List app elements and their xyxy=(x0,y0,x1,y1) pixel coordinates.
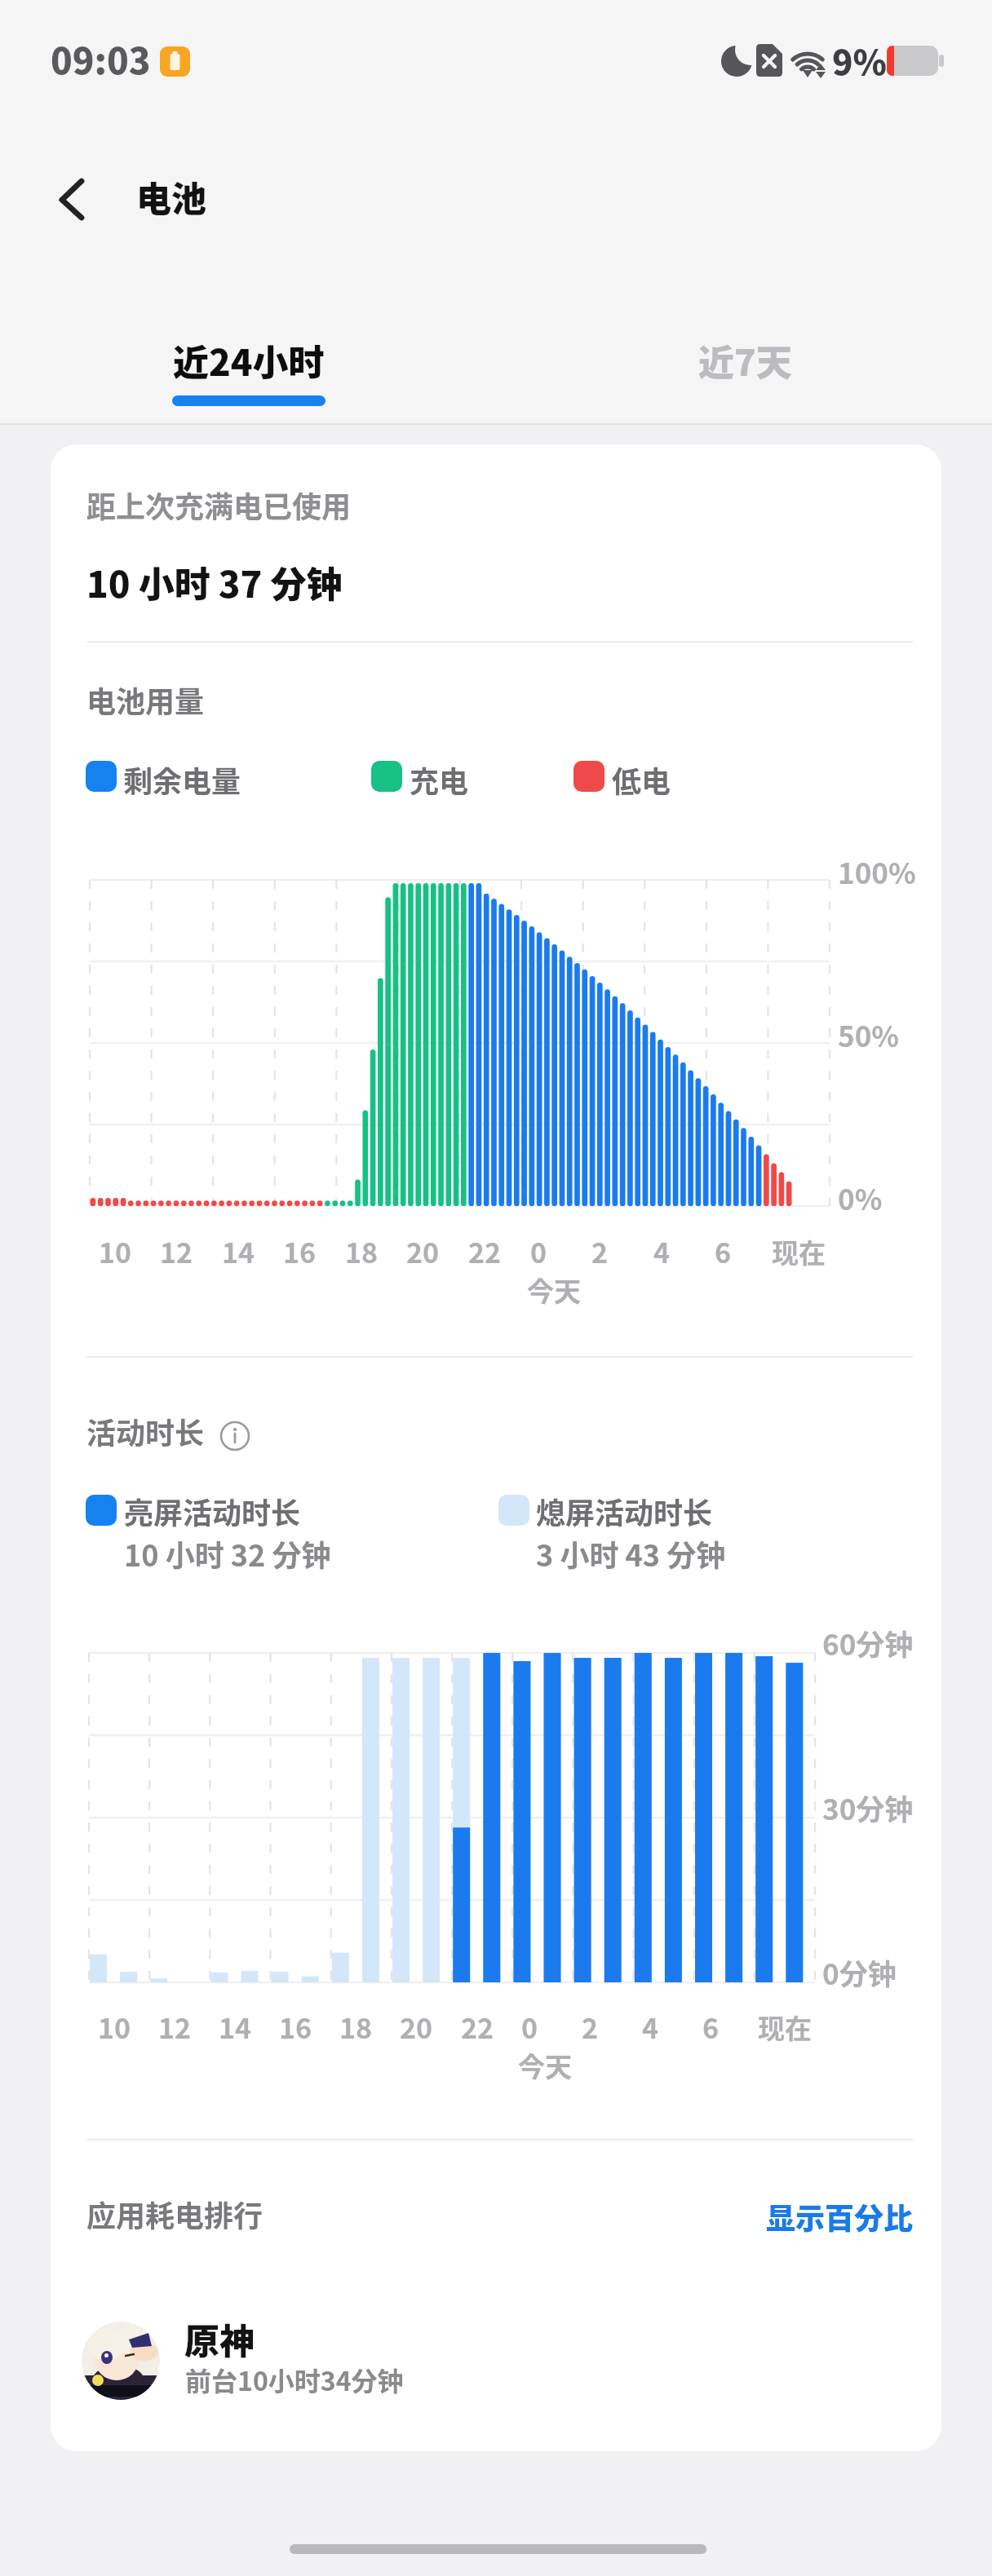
button[interactable] xyxy=(51,2291,941,2430)
staticText: 14 xyxy=(219,2007,252,2047)
staticText: 原神 xyxy=(184,2313,255,2364)
staticText: 2 xyxy=(582,2007,599,2047)
staticText: 16 xyxy=(279,2007,312,2047)
staticText: 10 小时 37 分钟 xyxy=(86,556,343,608)
staticText: 10 xyxy=(99,1231,132,1271)
staticText: 剩余电量 xyxy=(123,758,241,801)
staticText: 0% xyxy=(838,1177,883,1218)
staticText: 18 xyxy=(345,1231,379,1271)
staticText: 熄屏活动时长 xyxy=(536,1490,713,1532)
staticText: 电池 xyxy=(136,171,206,222)
staticText: 0 xyxy=(530,1231,547,1271)
staticText: 20 xyxy=(406,1231,440,1271)
staticText: 近7天 xyxy=(698,334,792,387)
staticText: 亮屏活动时长 xyxy=(124,1490,301,1532)
staticText: 60分钟 xyxy=(822,1622,914,1664)
staticText: 20 xyxy=(400,2007,433,2047)
staticText: 4 xyxy=(653,1231,671,1271)
staticText: 10 小时 32 分钟 xyxy=(124,1532,331,1575)
staticText: 今天 xyxy=(527,1270,581,1310)
staticText: 今天 xyxy=(518,2046,572,2085)
staticText: 0分钟 xyxy=(822,1951,897,1993)
button[interactable]: 近24小时 xyxy=(51,326,447,424)
button[interactable]: 显示百分比 xyxy=(751,2184,914,2249)
staticText: 0 xyxy=(521,2007,538,2047)
staticText: 22 xyxy=(468,1231,502,1271)
staticText: 现在 xyxy=(772,1232,826,1271)
staticText: 低电 xyxy=(612,758,671,801)
staticText: 电池用量 xyxy=(86,678,205,721)
staticText: 3 小时 43 分钟 xyxy=(536,1532,726,1575)
staticText: 前台10小时34分钟 xyxy=(185,2361,404,2398)
staticText: 6 xyxy=(715,1231,732,1271)
staticText: 16 xyxy=(283,1231,317,1271)
staticText: 2 xyxy=(591,1231,609,1271)
staticText: 12 xyxy=(158,2007,192,2047)
staticText: 10 xyxy=(98,2007,131,2047)
staticText: 18 xyxy=(339,2007,373,2047)
button[interactable]: 近7天 xyxy=(547,326,943,424)
staticText: 距上次充满电已使用 xyxy=(86,484,352,526)
staticText: 6 xyxy=(702,2007,720,2047)
staticText: 充电 xyxy=(410,758,469,801)
staticText: 12 xyxy=(160,1231,193,1271)
staticText: 近24小时 xyxy=(173,334,325,387)
staticText: 50% xyxy=(838,1014,900,1055)
staticText: 活动时长 xyxy=(86,1410,205,1452)
staticText: 30分钟 xyxy=(822,1787,914,1828)
staticText: 100% xyxy=(838,851,916,892)
staticText: 9% xyxy=(832,35,887,85)
staticText: 09:03 xyxy=(51,33,151,85)
staticText: 显示百分比 xyxy=(766,2195,914,2238)
staticText: 22 xyxy=(461,2007,494,2047)
staticText: 4 xyxy=(642,2007,659,2047)
button[interactable]: Back xyxy=(33,155,122,245)
staticText: 应用耗电排行 xyxy=(86,2193,263,2235)
staticText: 现在 xyxy=(758,2008,812,2047)
staticText: 14 xyxy=(222,1231,255,1271)
